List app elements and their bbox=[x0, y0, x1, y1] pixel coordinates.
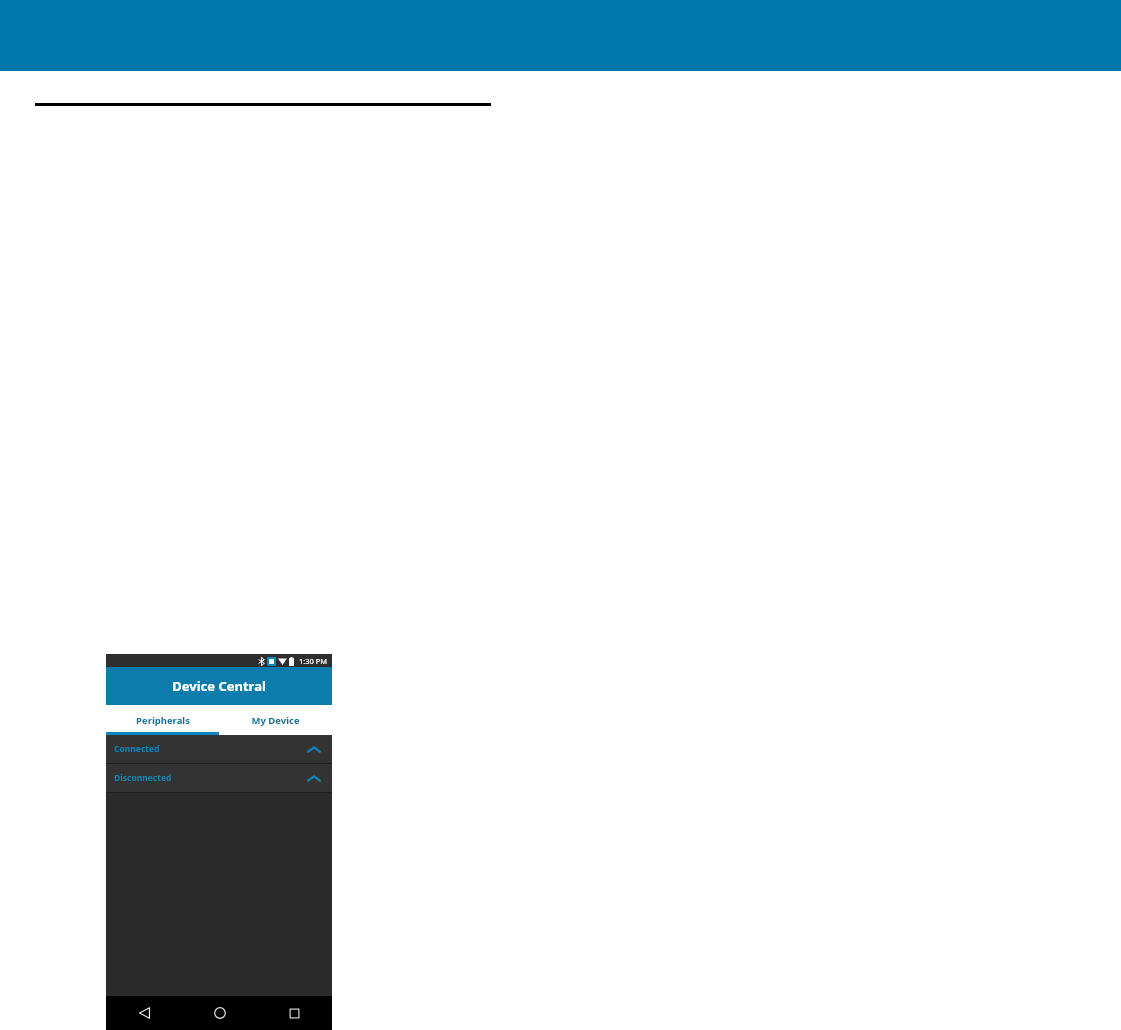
button[interactable]: Home bbox=[182, 996, 257, 1030]
staticText: My Device bbox=[251, 714, 300, 727]
button[interactable]: Peripherals bbox=[106, 705, 219, 735]
staticText: Device Central bbox=[172, 677, 266, 695]
other: Collapse Disconnected bbox=[304, 768, 324, 788]
staticText: 1:30 PM bbox=[299, 656, 328, 666]
staticText: Peripherals bbox=[136, 714, 190, 727]
staticText: Disconnected bbox=[114, 772, 172, 784]
staticText: Connected bbox=[114, 743, 160, 755]
button[interactable]: My Device bbox=[219, 705, 332, 735]
button[interactable]: Connected bbox=[106, 735, 332, 763]
button[interactable]: Back bbox=[106, 996, 182, 1030]
button[interactable]: Disconnected bbox=[106, 764, 332, 792]
other: Collapse Connected bbox=[304, 739, 324, 759]
button[interactable]: Recent apps bbox=[257, 996, 332, 1030]
